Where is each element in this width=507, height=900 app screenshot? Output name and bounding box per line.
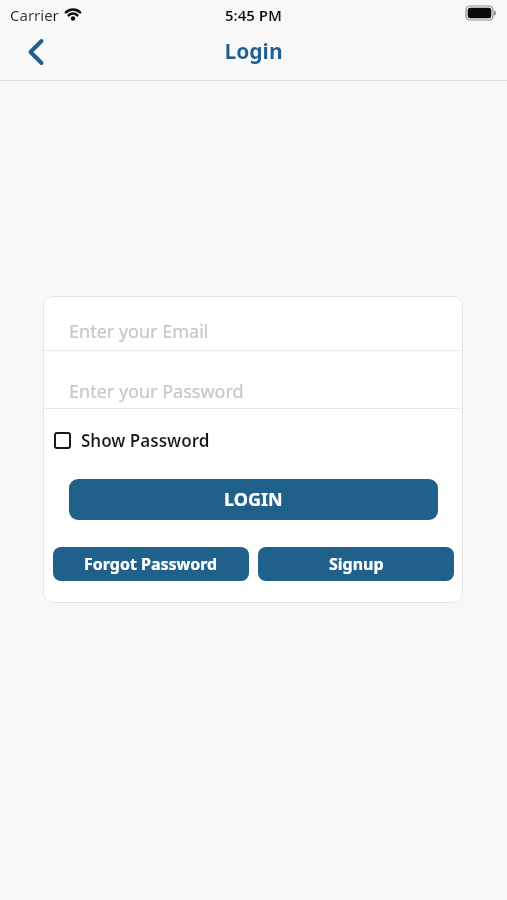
staticText: 5:45 PM (0, 5, 507, 25)
staticText: Enter your Email (69, 319, 209, 344)
button[interactable]: Enter your Password (43, 351, 463, 408)
staticText: LOGIN (224, 487, 283, 512)
staticText: Show Password (81, 429, 210, 452)
staticText: Carrier (10, 5, 59, 25)
button[interactable]: Enter your Email (43, 296, 463, 351)
staticText: Signup (329, 553, 384, 575)
button[interactable]: LOGIN (69, 479, 438, 520)
button[interactable]: Show Password (54, 424, 210, 456)
button[interactable] (20, 36, 52, 68)
button[interactable]: Signup (258, 547, 454, 581)
button[interactable]: Forgot Password (53, 547, 249, 581)
staticText: Forgot Password (84, 553, 218, 575)
staticText: Enter your Password (69, 379, 244, 404)
staticText: Login (0, 37, 507, 66)
